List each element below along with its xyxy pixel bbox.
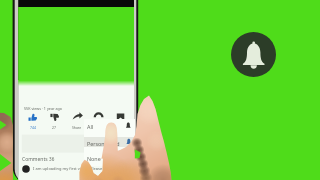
button[interactable]: [84, 137, 135, 147]
button[interactable]: Subscribe notification bell: [231, 32, 276, 77]
staticText: I am uploading my first video. Please co…: [33, 166, 122, 171]
staticText: 36: [49, 156, 55, 162]
staticText: 27: [52, 125, 56, 130]
button[interactable]: All: [87, 123, 94, 130]
staticText: 744: [30, 125, 36, 130]
staticText: Comments: [22, 156, 48, 163]
button[interactable]: Personalised: [87, 140, 120, 147]
staticText: Share: [72, 125, 82, 130]
staticText: 55K views · 1 year ago: [24, 106, 63, 111]
button[interactable]: None: [87, 155, 101, 162]
